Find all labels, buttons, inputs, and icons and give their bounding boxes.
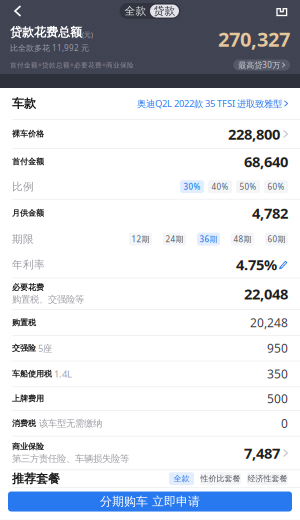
staticText: 68,640 xyxy=(244,152,288,171)
staticText: 270,327 xyxy=(218,26,290,52)
button[interactable]: 60% xyxy=(264,180,288,193)
staticText: 经济性套餐 xyxy=(247,474,287,484)
staticText: 购置税、交强险等 xyxy=(12,294,84,305)
staticText: 消费税 xyxy=(12,418,36,428)
staticText: 0 xyxy=(281,415,288,431)
staticText: 12期 xyxy=(131,234,149,244)
button[interactable]: 车船使用税 xyxy=(0,361,300,386)
staticText: 7,487 xyxy=(244,443,280,463)
staticText: 商业保险 xyxy=(12,442,44,451)
button[interactable]: 消费税 xyxy=(0,411,300,436)
staticText: 20,248 xyxy=(250,314,288,330)
staticText: 40% xyxy=(211,181,228,192)
button[interactable]: 裸车价格 xyxy=(0,120,300,148)
staticText: 车款 xyxy=(12,96,36,111)
staticText: 30% xyxy=(183,181,200,192)
button[interactable]: 贷款 xyxy=(150,4,179,17)
staticText: 上牌费用 xyxy=(12,394,44,403)
button[interactable]: 全款 xyxy=(121,4,150,17)
button[interactable]: 车款 xyxy=(0,88,300,119)
button[interactable]: 经济性套餐 xyxy=(247,472,288,485)
staticText: 比例 xyxy=(12,180,34,193)
staticText: 全款 xyxy=(124,4,146,17)
staticText: 5座 xyxy=(36,342,52,354)
staticText: 48期 xyxy=(233,234,251,244)
button[interactable]: 购置税 xyxy=(0,310,300,335)
staticText: 首付金额+贷款总额+必要花费+商业保险 xyxy=(10,61,134,69)
staticText: 4,782 xyxy=(252,203,288,223)
button[interactable]: 40% xyxy=(208,180,232,193)
button[interactable]: Back xyxy=(6,0,30,22)
button[interactable]: 性价比套餐 xyxy=(200,472,241,485)
staticText: 36期 xyxy=(199,234,217,244)
staticText: 交强险 xyxy=(12,343,36,353)
staticText: 50% xyxy=(239,181,256,192)
staticText: 228,800 xyxy=(228,124,280,144)
button[interactable]: 全款 xyxy=(169,472,194,485)
button[interactable]: 首付金额 xyxy=(0,149,300,174)
staticText: 1.4L xyxy=(52,368,72,380)
staticText: 年利率 xyxy=(12,258,45,271)
staticText: 第三方责任险、车辆损失险等 xyxy=(12,453,129,464)
staticText: 裸车价格 xyxy=(12,129,44,139)
staticText: 性价比套餐 xyxy=(200,474,240,484)
staticText: 4.75% xyxy=(236,255,277,274)
staticText: 奥迪Q2L 2022款 35 TFSI 进取致雅型 xyxy=(137,97,282,110)
staticText: 购置税 xyxy=(12,318,36,327)
staticText: 350 xyxy=(267,366,288,382)
staticText: 60期 xyxy=(267,234,285,244)
button[interactable]: 上牌费用 xyxy=(0,387,300,410)
staticText: 500 xyxy=(267,391,288,406)
button[interactable]: 36期 xyxy=(197,233,220,246)
staticText: 24期 xyxy=(165,234,183,244)
staticText: 贷款 xyxy=(153,4,175,17)
staticText: 首付金额 xyxy=(12,157,44,166)
staticText: 最高贷30万 xyxy=(238,60,280,70)
button[interactable]: 60期 xyxy=(265,233,288,246)
button[interactable]: 月供金额 xyxy=(0,200,300,227)
button[interactable]: 分期购车 立即申请 xyxy=(8,491,292,511)
staticText: 贷款花费总额 xyxy=(10,25,82,39)
button[interactable]: 30% xyxy=(180,180,204,193)
staticText: 该车型无需缴纳 xyxy=(36,418,102,429)
button[interactable]: 12期 xyxy=(129,233,152,246)
button[interactable]: Share xyxy=(270,0,294,22)
staticText: (元) xyxy=(82,30,93,39)
button[interactable]: 48期 xyxy=(231,233,254,246)
button[interactable]: 最高贷30万 xyxy=(233,59,290,70)
staticText: 分期购车 立即申请 xyxy=(100,494,200,509)
staticText: 全款 xyxy=(173,474,189,484)
staticText: 60% xyxy=(267,181,284,192)
staticText: 必要花费 xyxy=(12,282,44,292)
button[interactable]: 24期 xyxy=(163,233,186,246)
staticText: 车船使用税 xyxy=(12,369,52,379)
staticText: 22,048 xyxy=(244,284,288,304)
button[interactable]: 商业保险 xyxy=(0,436,300,469)
staticText: 950 xyxy=(267,340,288,356)
staticText: 推荐套餐 xyxy=(12,471,60,486)
staticText: 比全款多花 11,992 元 xyxy=(10,43,89,53)
staticText: 期限 xyxy=(12,232,34,246)
button[interactable]: 必要花费 xyxy=(0,278,300,309)
button[interactable]: 50% xyxy=(236,180,260,193)
button[interactable]: 交强险 xyxy=(0,336,300,361)
staticText: 月供金额 xyxy=(12,208,44,218)
